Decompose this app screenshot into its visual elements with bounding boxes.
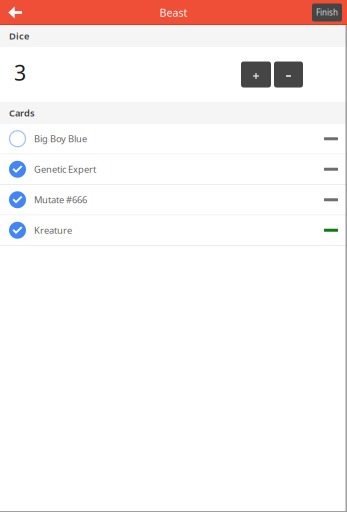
button[interactable]: Big Boy Blue [0,124,347,154]
staticText: Kreature [34,224,72,236]
button[interactable]: Finish [312,3,342,21]
button[interactable]: Kreature [0,215,347,246]
button[interactable]: Genetic Expert [0,154,347,185]
staticText: Mutate #666 [34,194,87,206]
button[interactable]: Mutate #666 [0,185,347,215]
button[interactable]: Increase [241,61,271,87]
staticText: Dice [9,30,29,42]
staticText: Genetic Expert [34,163,96,175]
staticText: Cards [9,107,35,119]
button[interactable]: Decrease [274,61,303,87]
staticText: 3 [14,58,26,87]
staticText: Big Boy Blue [34,133,87,145]
staticText: Beast [159,5,187,20]
staticText: Finish [316,7,338,18]
button[interactable]: Back [0,1,30,24]
